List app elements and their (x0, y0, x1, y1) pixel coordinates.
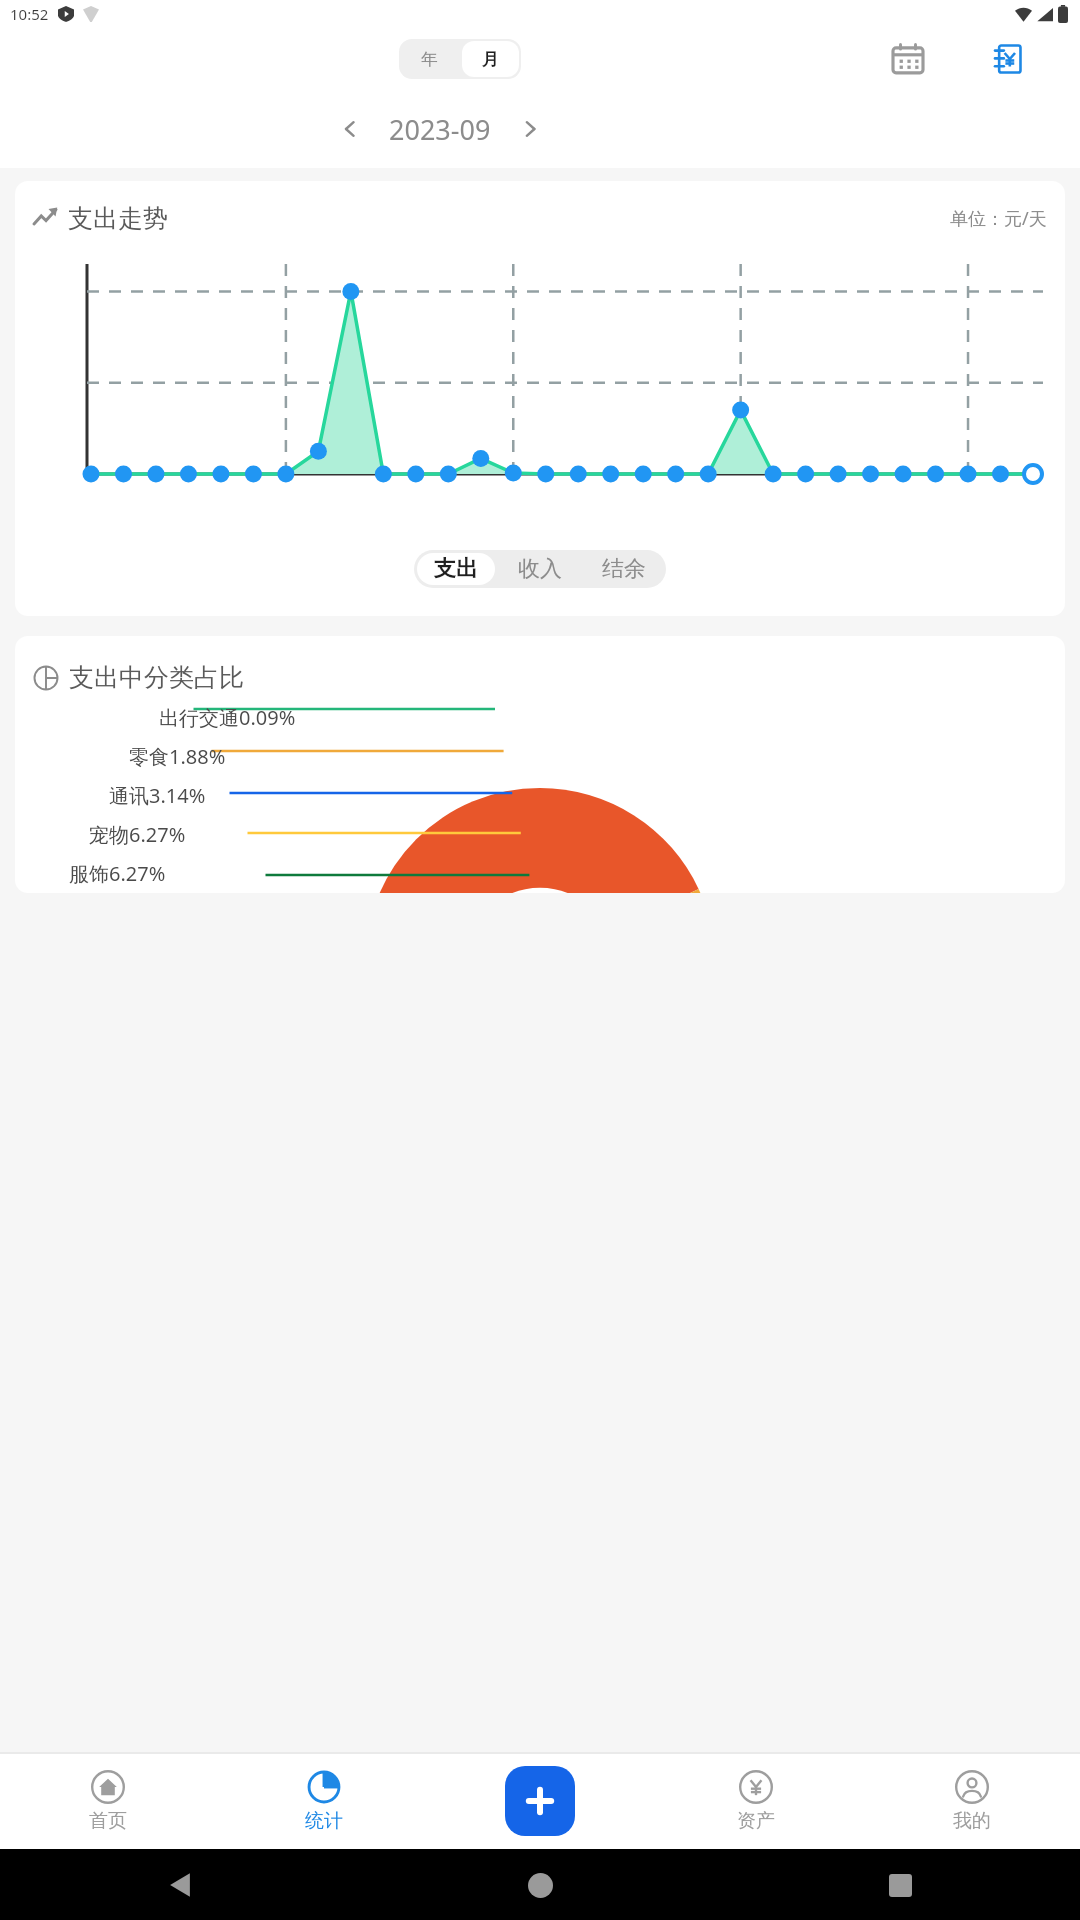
button[interactable]: 结余 (602, 550, 646, 588)
button[interactable]: 资产 (648, 1753, 864, 1849)
button[interactable]: Previous month (327, 106, 373, 152)
button[interactable]: Home (514, 1859, 566, 1911)
button[interactable]: 统计 (216, 1753, 432, 1849)
staticText: 年 (421, 49, 438, 70)
button[interactable]: Next month (507, 106, 553, 152)
button[interactable]: Ledger (988, 39, 1028, 79)
staticText: 收入 (518, 555, 562, 583)
staticText: 月 (482, 49, 499, 70)
staticText: 服饰6.27% (69, 860, 166, 887)
button[interactable]: Recents (874, 1859, 926, 1911)
staticText: 通讯3.14% (109, 782, 206, 809)
staticText: 首页 (89, 1809, 127, 1833)
staticText: 出行交通0.09% (159, 704, 296, 731)
button[interactable]: 我的 (864, 1753, 1080, 1849)
staticText: 零食1.88% (129, 743, 226, 770)
staticText: 支出中分类占比 (69, 662, 244, 693)
staticText: 单位：元/天 (950, 206, 1047, 231)
staticText: 2023-09 (389, 111, 491, 148)
button[interactable]: 月 (462, 41, 519, 77)
staticText: 资产 (737, 1809, 775, 1833)
button[interactable]: Calendar (888, 39, 928, 79)
staticText: 10:52 (10, 4, 49, 24)
button[interactable]: Add record (505, 1766, 575, 1836)
staticText: 宠物6.27% (89, 821, 186, 848)
staticText: 结余 (602, 555, 646, 583)
button[interactable]: Back (154, 1859, 206, 1911)
button[interactable]: 支出 (434, 553, 478, 585)
staticText: 我的 (953, 1809, 991, 1833)
staticText: 支出 (434, 555, 478, 583)
staticText: 统计 (305, 1809, 343, 1833)
button[interactable]: 首页 (0, 1753, 216, 1849)
button[interactable]: 年 (399, 39, 460, 79)
staticText: 支出走势 (68, 203, 168, 234)
button[interactable]: 收入 (518, 550, 562, 588)
